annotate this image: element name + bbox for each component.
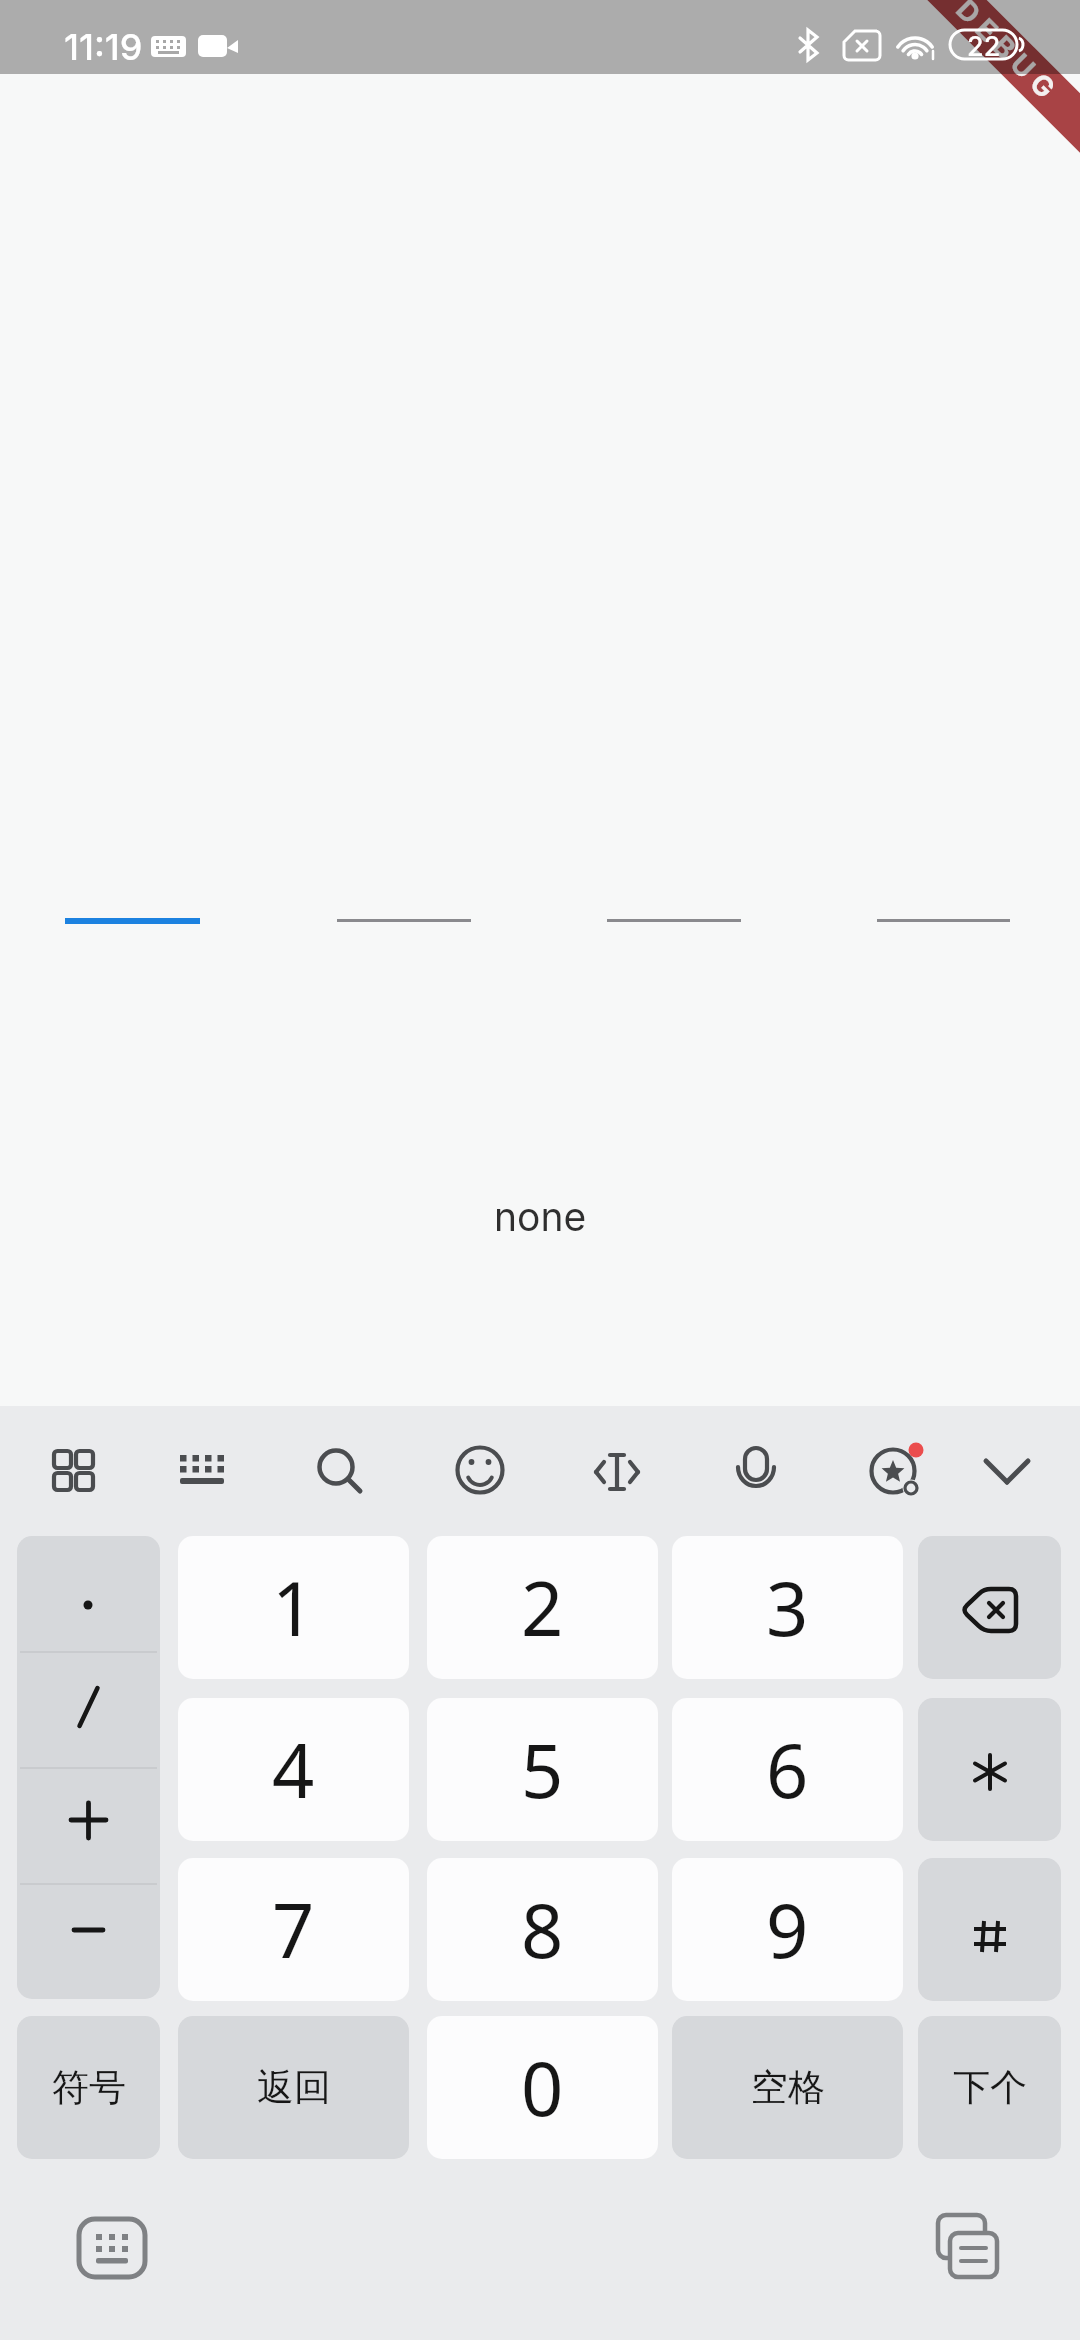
button[interactable]: 9 [672, 1858, 903, 2001]
staticText: 1 [272, 1557, 315, 1658]
button[interactable] [295, 1426, 385, 1516]
button[interactable] [918, 1698, 1061, 1841]
button[interactable] [917, 2202, 1017, 2292]
button[interactable]: 7 [178, 1858, 409, 2001]
staticText: 返回 [257, 2064, 331, 2111]
button[interactable]: 1 [178, 1536, 409, 1679]
staticText: 符号 [52, 2064, 126, 2111]
staticText: 0 [521, 2037, 564, 2138]
button[interactable]: 返回 [178, 2016, 409, 2159]
button[interactable]: 3 [672, 1536, 903, 1679]
button[interactable] [156, 1426, 246, 1516]
staticText: DEBUG [949, 0, 1067, 110]
button[interactable] [17, 1536, 160, 1999]
button[interactable]: 4 [178, 1698, 409, 1841]
button[interactable] [435, 1426, 525, 1516]
button[interactable] [28, 1426, 118, 1516]
button[interactable]: 8 [427, 1858, 658, 2001]
staticText: 8 [521, 1879, 564, 1980]
staticText: 6 [766, 1719, 809, 1820]
staticText: 5 [521, 1719, 564, 1820]
button[interactable]: 0 [427, 2016, 658, 2159]
button[interactable] [62, 2202, 162, 2292]
staticText: 下个 [953, 2064, 1027, 2111]
button[interactable]: 符号 [17, 2016, 160, 2159]
button[interactable] [918, 1536, 1061, 1679]
staticText: 4 [272, 1719, 315, 1820]
button[interactable]: 空格 [672, 2016, 903, 2159]
staticText: 9 [766, 1879, 809, 1980]
staticText: 7 [272, 1879, 315, 1980]
button[interactable] [962, 1426, 1052, 1516]
button[interactable]: 5 [427, 1698, 658, 1841]
staticText: none [494, 1193, 587, 1240]
button[interactable] [918, 1858, 1061, 2001]
staticText: 3 [766, 1557, 809, 1658]
staticText: 2 [521, 1557, 564, 1658]
button[interactable] [711, 1426, 801, 1516]
button[interactable]: 2 [427, 1536, 658, 1679]
button[interactable]: 下个 [918, 2016, 1061, 2159]
button[interactable]: 6 [672, 1698, 903, 1841]
staticText: 空格 [751, 2064, 825, 2111]
staticText: 11:19 [64, 25, 143, 69]
staticText: 22 [967, 30, 1001, 59]
button[interactable] [572, 1426, 662, 1516]
button[interactable] [850, 1426, 940, 1516]
